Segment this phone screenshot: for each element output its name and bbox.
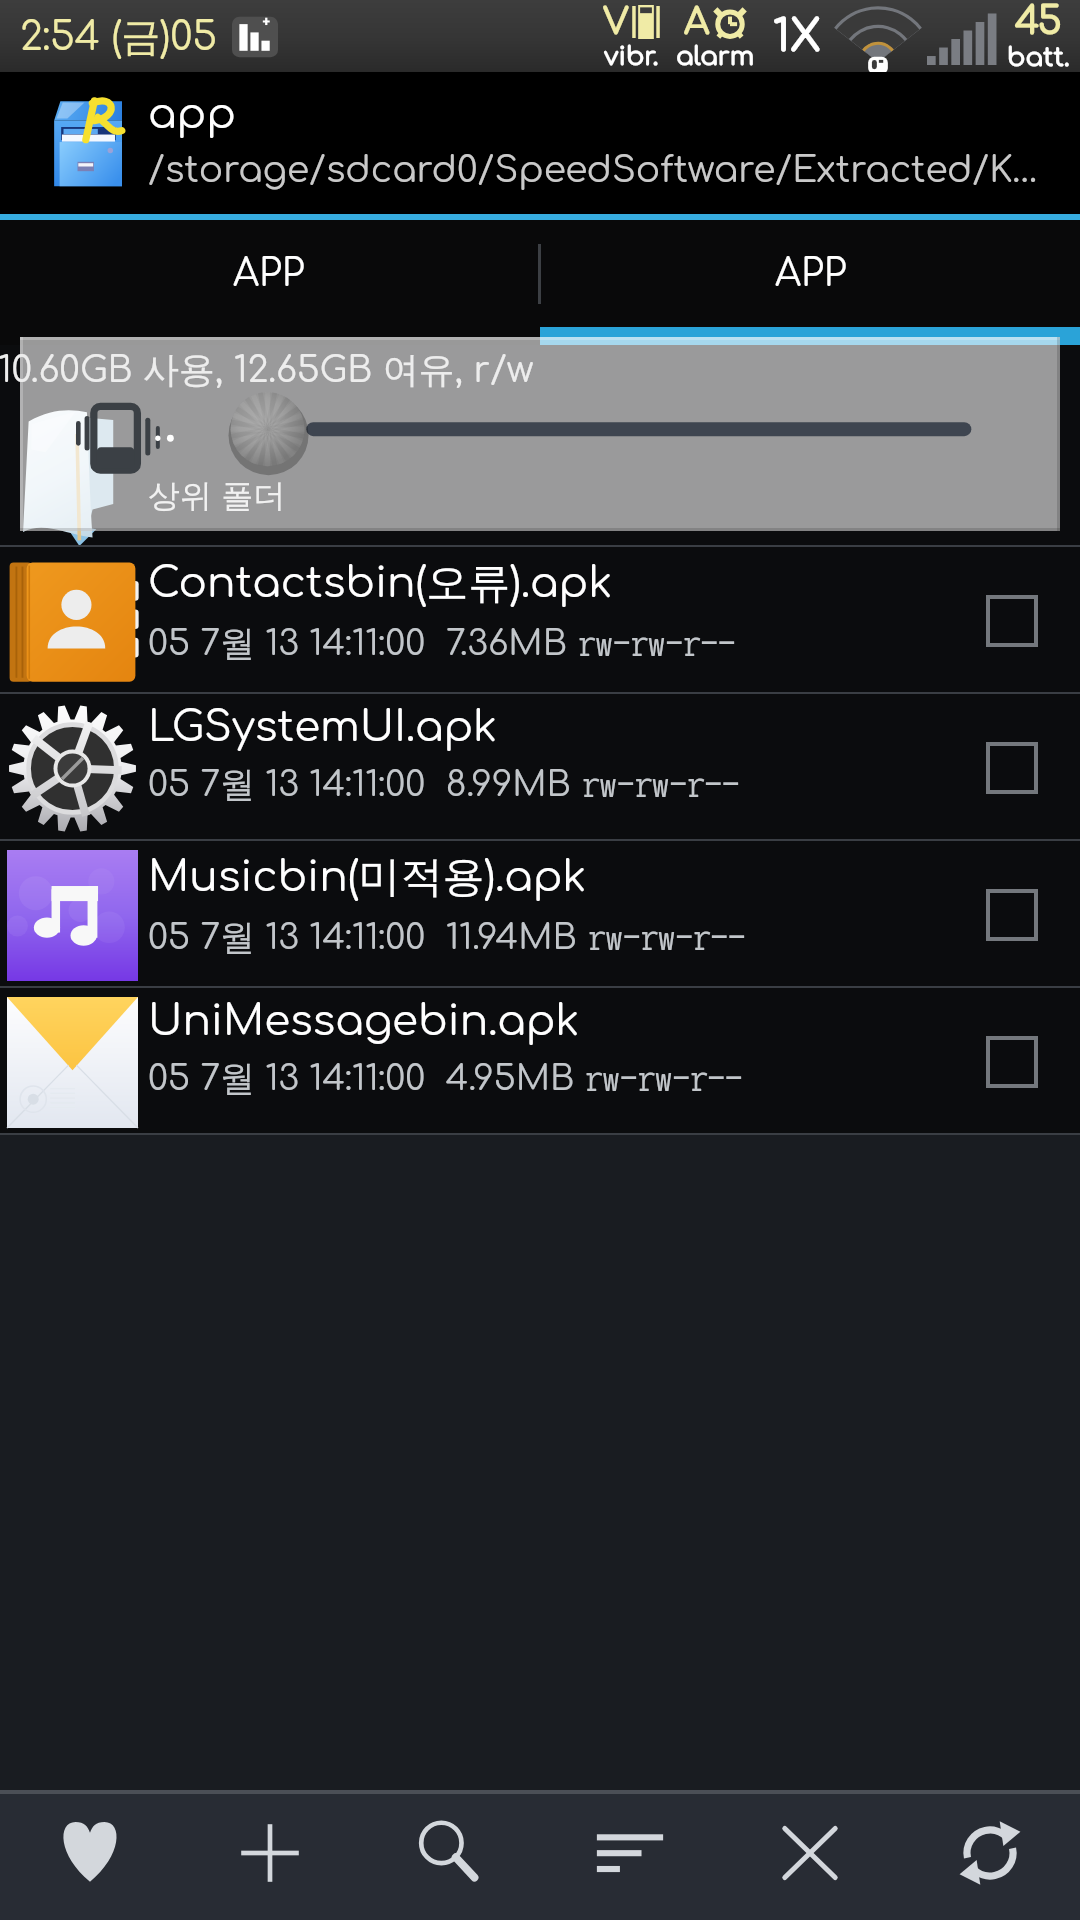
staticText: 05 7월 13 14:11:00 11.94MB — [148, 915, 588, 959]
staticText: A — [684, 2, 710, 42]
button[interactable]: Favorites — [0, 1794, 180, 1920]
button[interactable]: UniMessagebin.apk — [0, 988, 1080, 1135]
staticText: 05 7월 13 14:11:00 4.95MB — [148, 1056, 585, 1100]
button[interactable]: Select file — [944, 841, 1080, 988]
button[interactable]: Search — [360, 1794, 540, 1920]
staticText: app — [148, 91, 236, 138]
staticText: 45 — [1015, 1, 1062, 43]
staticText: 상위 폴더 — [148, 476, 286, 516]
button[interactable]: 상위 폴더 — [0, 345, 1080, 547]
staticText: LGSystemUI.apk — [148, 704, 498, 751]
staticText: UniMessagebin.apk — [148, 998, 580, 1045]
staticText: rw-rw-r-- — [588, 920, 746, 955]
button[interactable]: Refresh — [900, 1794, 1080, 1920]
staticText: rw-rw-r-- — [585, 1061, 743, 1096]
button[interactable]: Contactsbin(오류).apk — [0, 547, 1080, 694]
staticText: Contactsbin(오류).apk — [148, 557, 613, 610]
button[interactable]: Select file — [944, 547, 1080, 694]
staticText: 10.60GB 사용, 12.65GB 여유, r/w — [0, 347, 534, 392]
button[interactable]: Select file — [944, 988, 1080, 1135]
staticText: batt. — [1007, 43, 1070, 72]
button[interactable]: APP — [541, 220, 1080, 327]
button[interactable]: Select file — [944, 694, 1080, 841]
staticText: rw-rw-r-- — [582, 767, 740, 802]
staticText: Musicbin(미적용).apk — [148, 851, 587, 904]
button[interactable]: Close — [720, 1794, 900, 1920]
staticText: /storage/sdcard0/SpeedSoftware/Extracted… — [148, 150, 1039, 190]
button[interactable]: Current folder: app — [0, 72, 1080, 214]
staticText: 1X — [773, 12, 821, 61]
staticText: V — [603, 2, 629, 42]
button[interactable]: APP — [0, 220, 538, 327]
button[interactable]: New folder — [180, 1794, 360, 1920]
staticText: APP — [775, 253, 847, 294]
button[interactable]: Musicbin(미적용).apk — [0, 841, 1080, 988]
staticText: APP — [233, 253, 305, 294]
button[interactable]: LGSystemUI.apk — [0, 694, 1080, 841]
staticText: 2:54 (금)05 — [20, 12, 218, 61]
button[interactable]: Sort — [540, 1794, 720, 1920]
staticText: 05 7월 13 14:11:00 8.99MB — [148, 762, 582, 806]
staticText: vibr. — [604, 42, 659, 71]
staticText: rw-rw-r-- — [578, 626, 736, 661]
staticText: alarm — [676, 42, 755, 71]
staticText: 05 7월 13 14:11:00 7.36MB — [148, 621, 578, 665]
